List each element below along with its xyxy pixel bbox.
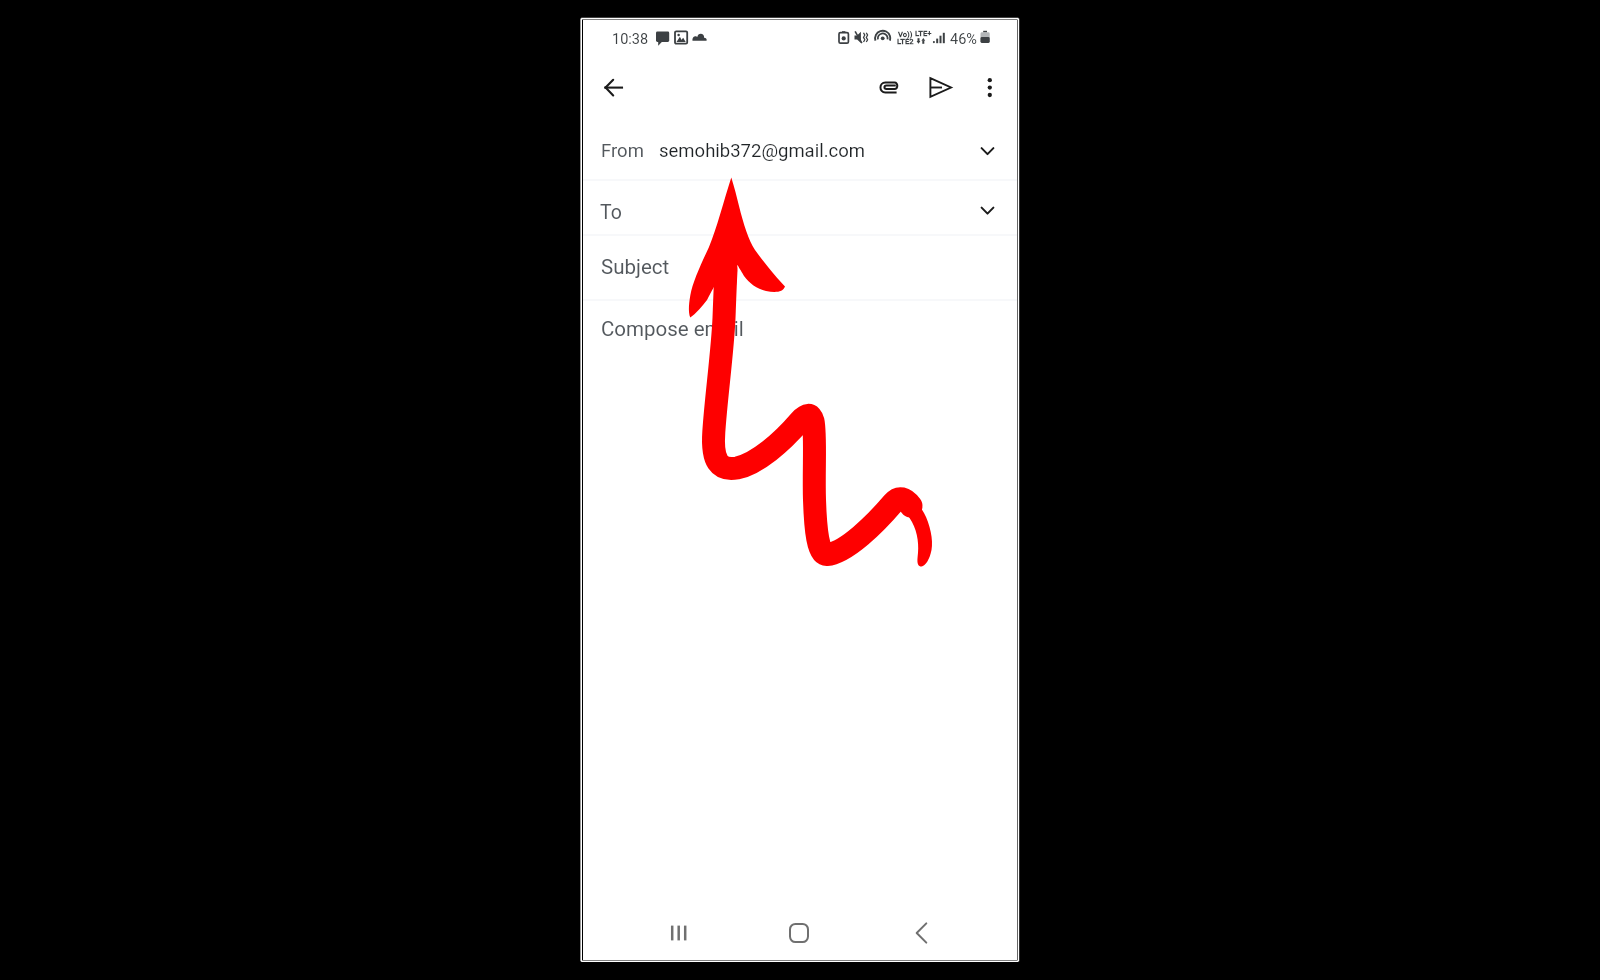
button[interactable]: Back (598, 64, 646, 112)
staticText: Compose email (601, 317, 744, 341)
button[interactable]: More options (966, 64, 1014, 112)
staticText: From (601, 140, 644, 162)
button[interactable]: Recent apps (648, 905, 708, 959)
staticText: LTE2 (897, 37, 914, 46)
button[interactable]: Send (916, 64, 964, 112)
button[interactable] (583, 300, 1017, 900)
staticText: Subject (601, 255, 670, 279)
staticText: semohib372@gmail.com (659, 140, 866, 162)
button[interactable]: Back (891, 905, 951, 959)
button[interactable] (583, 120, 1017, 180)
staticText: Vo)) (898, 30, 913, 39)
staticText: LTE+ (915, 29, 932, 38)
staticText: 10:38 (612, 31, 649, 48)
button[interactable] (583, 180, 1017, 235)
staticText: To (600, 201, 622, 224)
button[interactable] (583, 235, 1017, 300)
button[interactable]: Home (769, 905, 829, 959)
staticText: 46% (950, 31, 977, 48)
button[interactable]: Attach file (866, 64, 914, 112)
